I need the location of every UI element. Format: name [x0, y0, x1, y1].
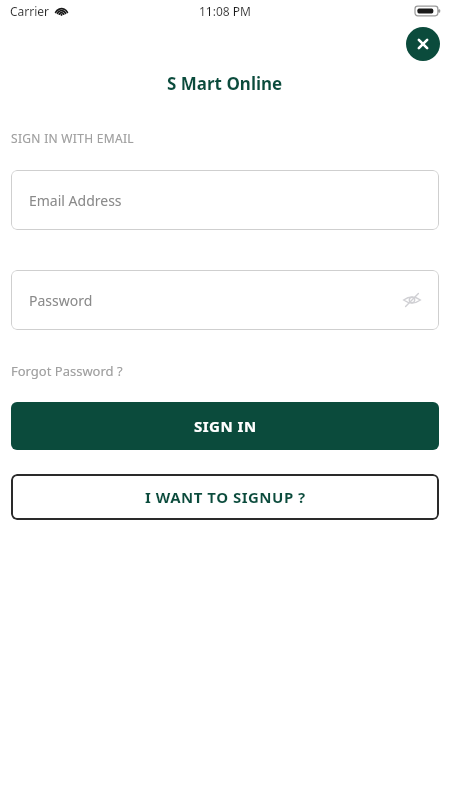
button[interactable]: Forgot Password ? [11, 362, 123, 380]
staticText: Password [29, 291, 93, 310]
staticText: 11:08 PM [199, 3, 251, 19]
staticText: Email Address [29, 191, 122, 210]
button[interactable]: Email Address [11, 170, 439, 230]
button[interactable]: Show password [399, 287, 425, 313]
button[interactable]: I WANT TO SIGNUP ? [11, 474, 439, 520]
button[interactable]: Password [11, 270, 439, 330]
staticText: Forgot Password ? [11, 362, 123, 380]
staticText: Carrier [10, 3, 50, 19]
staticText: S Mart Online [167, 72, 283, 95]
button[interactable]: SIGN IN [11, 402, 439, 450]
staticText: I WANT TO SIGNUP ? [145, 487, 306, 507]
staticText: SIGN IN WITH EMAIL [11, 130, 134, 146]
button[interactable]: Close [406, 27, 440, 61]
staticText: SIGN IN [194, 416, 257, 436]
